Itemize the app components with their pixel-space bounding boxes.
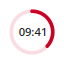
staticText: 09:41 xyxy=(19,24,47,39)
